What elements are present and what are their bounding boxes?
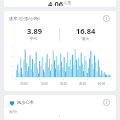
- button[interactable]: 4.06: [4, 0, 116, 7]
- button[interactable]: 跑步心率: [4, 95, 116, 120]
- button[interactable]: 速度 (公里/小時): [4, 11, 116, 91]
- staticText: 平均: [30, 37, 38, 42]
- staticText: 最大: [82, 37, 90, 42]
- staticText: 16.84: [76, 26, 96, 36]
- button[interactable]: Info: [102, 98, 111, 107]
- staticText: 15:00: [34, 82, 54, 86]
- staticText: 60:00: [92, 82, 111, 86]
- staticText: 速度 (公里/小時): [9, 16, 40, 22]
- staticText: 30:00: [54, 82, 73, 86]
- staticText: 00:00: [14, 82, 34, 86]
- button[interactable]: Info: [102, 14, 111, 23]
- staticText: 公里: [64, 1, 72, 6]
- staticText: 4.06: [48, 0, 63, 6]
- staticText: 3.89: [27, 26, 42, 36]
- staticText: 次/分: [9, 109, 18, 114]
- staticText: 跑步心率: [17, 100, 34, 105]
- staticText: 45:00: [73, 82, 92, 86]
